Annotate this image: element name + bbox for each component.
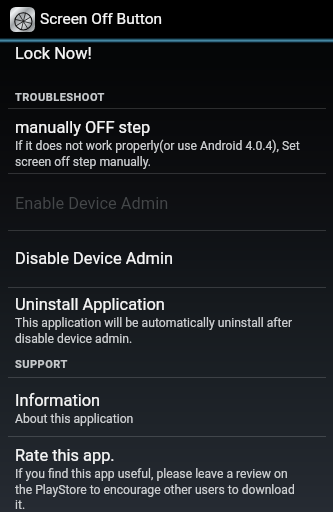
staticText: Lock Now!	[15, 44, 92, 63]
button[interactable]: manually OFF step	[0, 109, 333, 173]
staticText: About this application	[15, 412, 134, 426]
button[interactable]: Enable Device Admin	[0, 174, 333, 230]
staticText: Disable Device Admin	[15, 249, 174, 268]
staticText: If it does not work properly(or use Andr…	[15, 139, 300, 169]
other: App icon	[10, 7, 35, 32]
staticText: TROUBLESHOOT	[15, 91, 105, 104]
staticText: Uninstall Application	[15, 295, 165, 314]
button[interactable]: Disable Device Admin	[0, 231, 333, 287]
staticText: SUPPORT	[15, 358, 68, 371]
button[interactable]: Information	[0, 378, 333, 436]
staticText: Screen Off Button	[40, 10, 163, 28]
staticText: Information	[15, 391, 101, 410]
staticText: If you find this app useful, please leav…	[15, 467, 300, 512]
button[interactable]: Uninstall Application	[0, 288, 333, 346]
staticText: This application will be automatically u…	[15, 316, 300, 346]
button[interactable]: Rate this app.	[0, 437, 333, 512]
staticText: manually OFF step	[15, 118, 151, 137]
staticText: Rate this app.	[15, 446, 115, 465]
button[interactable]: Lock Now!	[0, 43, 333, 63]
button[interactable]: App icon	[0, 0, 333, 38]
staticText: Enable Device Admin	[15, 194, 169, 213]
